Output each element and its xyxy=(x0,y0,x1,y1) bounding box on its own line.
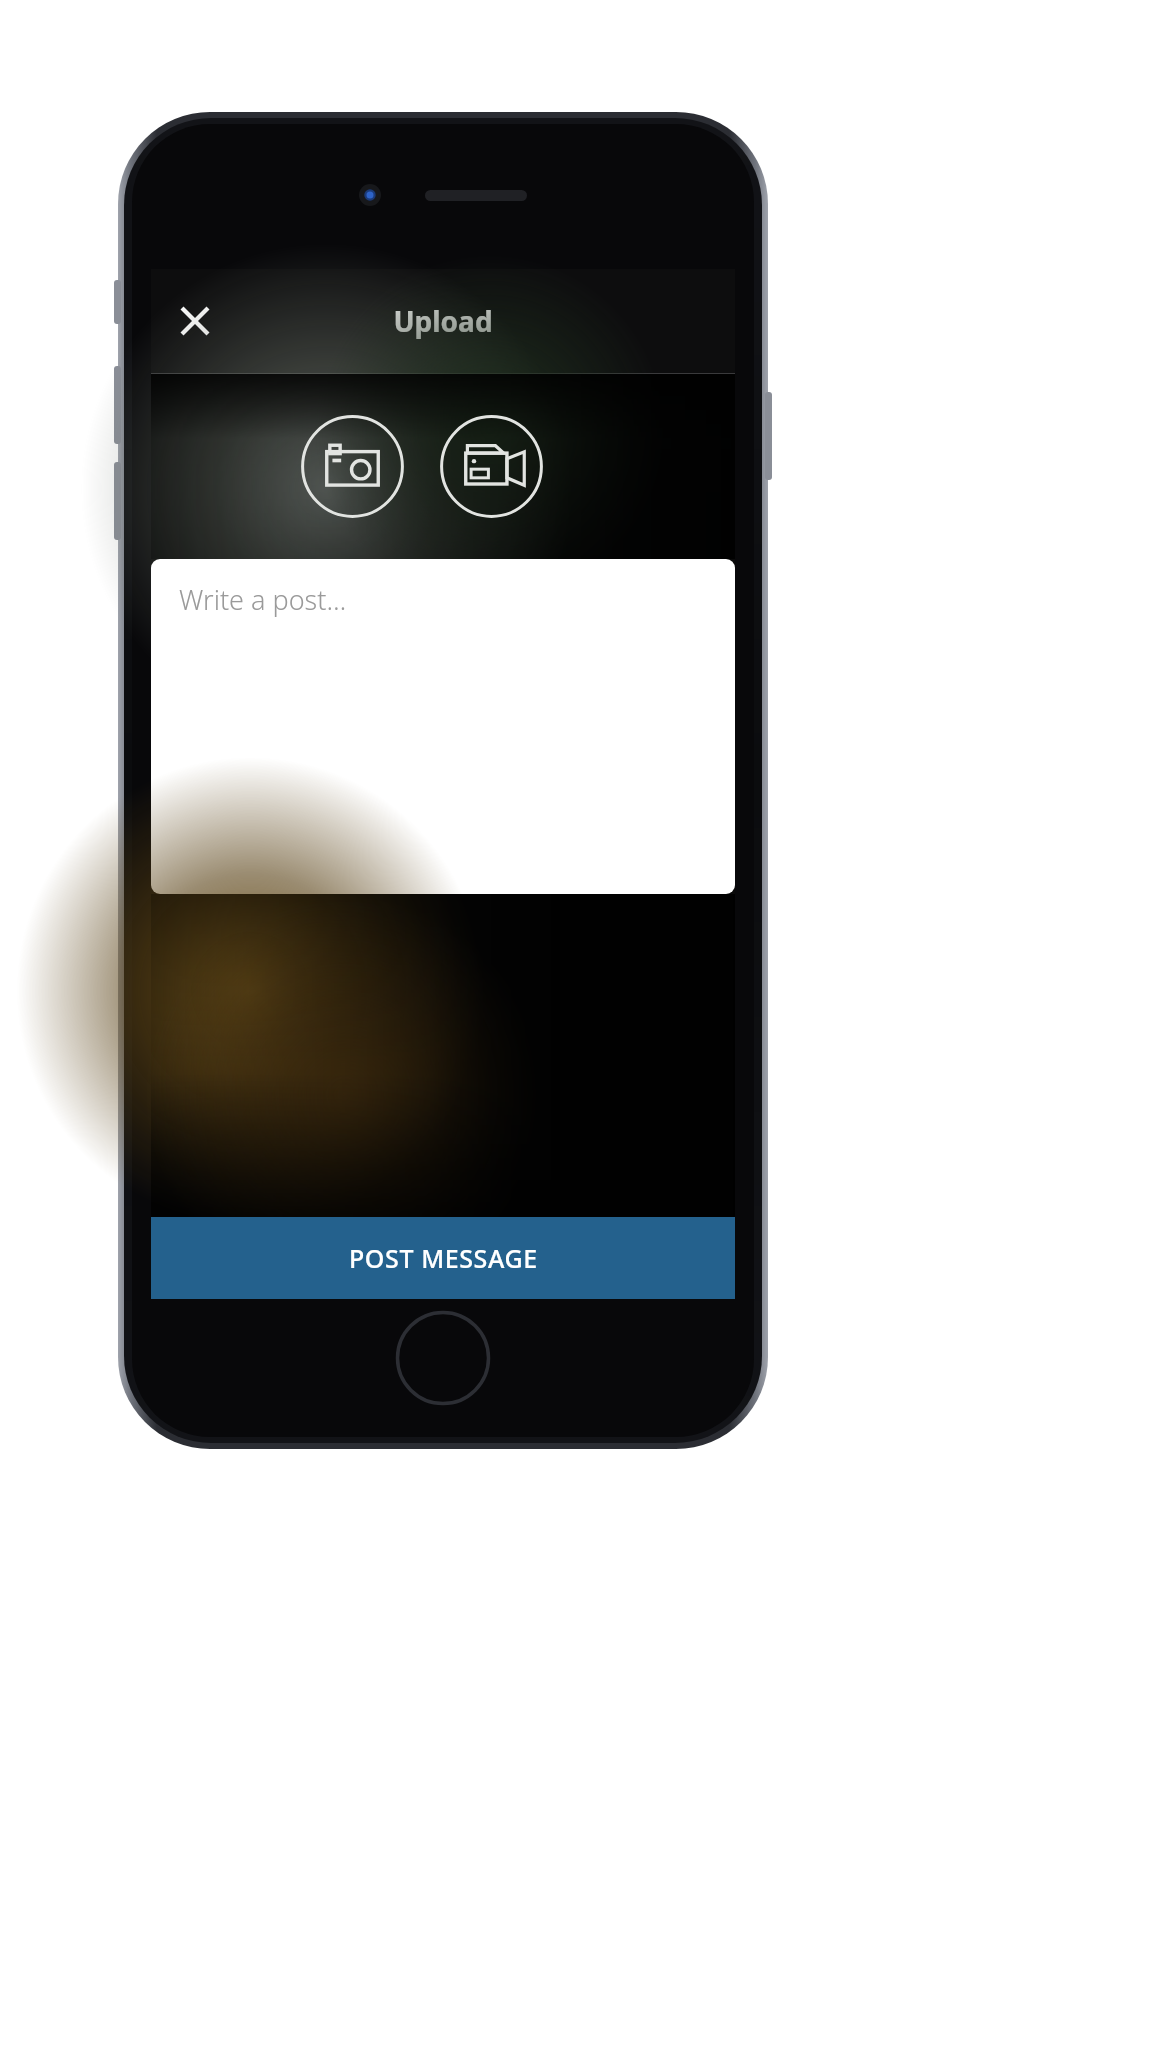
button[interactable]: Write a post… xyxy=(151,559,735,894)
staticText: Upload xyxy=(393,302,493,340)
button[interactable]: Record video xyxy=(440,415,543,518)
staticText: Write a post… xyxy=(179,581,347,618)
button[interactable]: Take photo xyxy=(301,415,404,518)
button[interactable]: Close xyxy=(167,293,223,349)
button[interactable]: POST MESSAGE xyxy=(151,1217,735,1299)
staticText: POST MESSAGE xyxy=(349,1241,538,1275)
